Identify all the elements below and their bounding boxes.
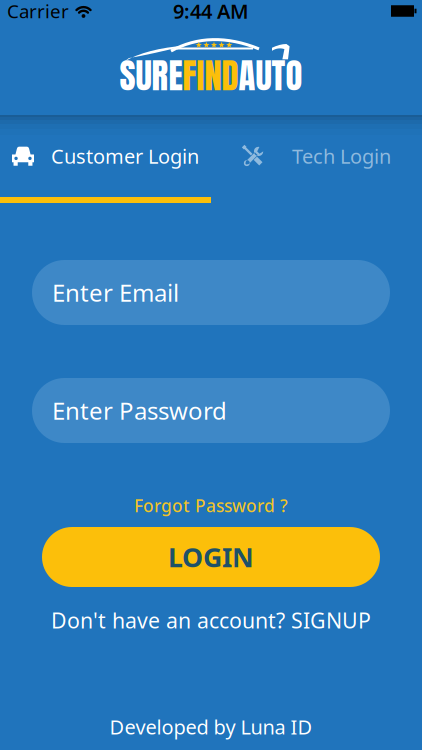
staticText: Forgot Password ?	[134, 494, 288, 517]
staticText: LOGIN	[168, 539, 254, 575]
staticText: Customer Login	[51, 143, 199, 169]
button[interactable]: LOGIN	[42, 527, 380, 587]
staticText: Carrier	[7, 0, 69, 23]
button[interactable]: Tech Login	[211, 115, 422, 197]
button[interactable]: Forgot Password ?	[134, 494, 288, 517]
staticText: AUTO	[238, 49, 302, 102]
staticText: Enter Email	[52, 277, 179, 308]
button[interactable]: Don't have an account? SIGNUP	[51, 606, 371, 634]
staticText: Developed by Luna ID	[109, 713, 312, 740]
staticText: FIND	[182, 49, 238, 102]
staticText: Tech Login	[292, 143, 391, 169]
staticText: Don't have an account? SIGNUP	[51, 606, 371, 634]
staticText: Enter Password	[52, 395, 227, 426]
button[interactable]: Enter Password	[32, 378, 390, 443]
staticText: 9:44 AM	[173, 0, 249, 24]
staticText: SURE	[119, 49, 182, 102]
button[interactable]: Customer Login	[0, 115, 211, 197]
button[interactable]: Enter Email	[32, 260, 390, 325]
